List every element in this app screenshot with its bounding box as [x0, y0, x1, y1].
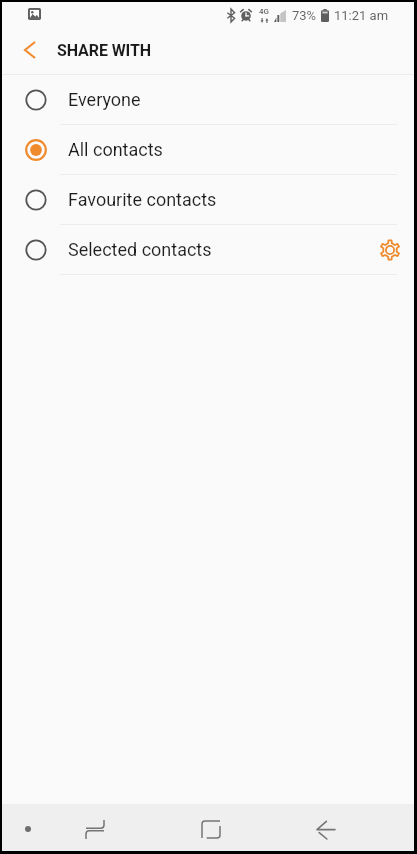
- staticText: 73%: [292, 8, 317, 23]
- button[interactable]: Settings: [366, 227, 412, 273]
- button[interactable]: All contacts: [2, 125, 414, 175]
- button[interactable]: Recent apps: [70, 804, 120, 851]
- staticText: 11:21 am: [334, 8, 389, 23]
- button[interactable]: Everyone: [2, 75, 414, 125]
- staticText: Everyone: [68, 89, 141, 110]
- button[interactable]: Selected contacts: [2, 225, 414, 275]
- button[interactable]: Home: [186, 804, 236, 851]
- staticText: Favourite contacts: [68, 189, 217, 210]
- button[interactable]: Favourite contacts: [2, 175, 414, 225]
- button[interactable]: Back: [301, 804, 351, 851]
- button[interactable]: Hide keyboard: [8, 804, 48, 851]
- staticText: Selected contacts: [68, 239, 212, 260]
- staticText: All contacts: [68, 139, 163, 160]
- button[interactable]: Navigate up: [4, 28, 52, 74]
- staticText: 4G: [259, 7, 269, 16]
- staticText: SHARE WITH: [57, 41, 151, 60]
